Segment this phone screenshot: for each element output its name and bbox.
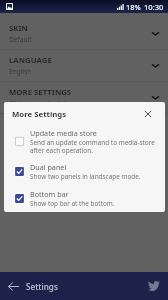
staticText: 18% <box>126 2 141 12</box>
staticText: English <box>9 67 32 76</box>
staticText: LANGUAGE <box>9 55 52 66</box>
staticText: Bottom bar <box>30 189 69 199</box>
staticText: Dual panel <box>30 162 67 172</box>
staticText: 10:30 <box>144 2 164 12</box>
staticText: Show top bar at the bottom. <box>30 199 115 208</box>
staticText: SKIN <box>9 23 28 34</box>
button[interactable]: Back <box>7 280 20 293</box>
staticText: Click to see the list <box>9 99 67 108</box>
button[interactable]: Twitter <box>148 280 160 292</box>
staticText: Settings <box>26 281 58 292</box>
staticText: Send an update command to media-store af… <box>30 138 155 155</box>
button[interactable]: LANGUAGE <box>0 50 168 82</box>
button[interactable]: Close dialog <box>140 106 156 122</box>
staticText: Default <box>9 35 32 44</box>
button[interactable]: Bottom bar <box>4 185 165 211</box>
staticText: Show two panels in landscape mode. <box>30 172 141 181</box>
staticText: More Settings <box>12 109 67 120</box>
staticText: MORE SETTINGS <box>9 87 72 98</box>
button[interactable]: MORE SETTINGS <box>0 82 168 114</box>
button[interactable]: Update media store <box>4 125 165 158</box>
button[interactable]: SKIN <box>0 18 168 50</box>
staticText: Update media store <box>30 128 97 138</box>
button[interactable]: Dual panel <box>4 158 165 185</box>
